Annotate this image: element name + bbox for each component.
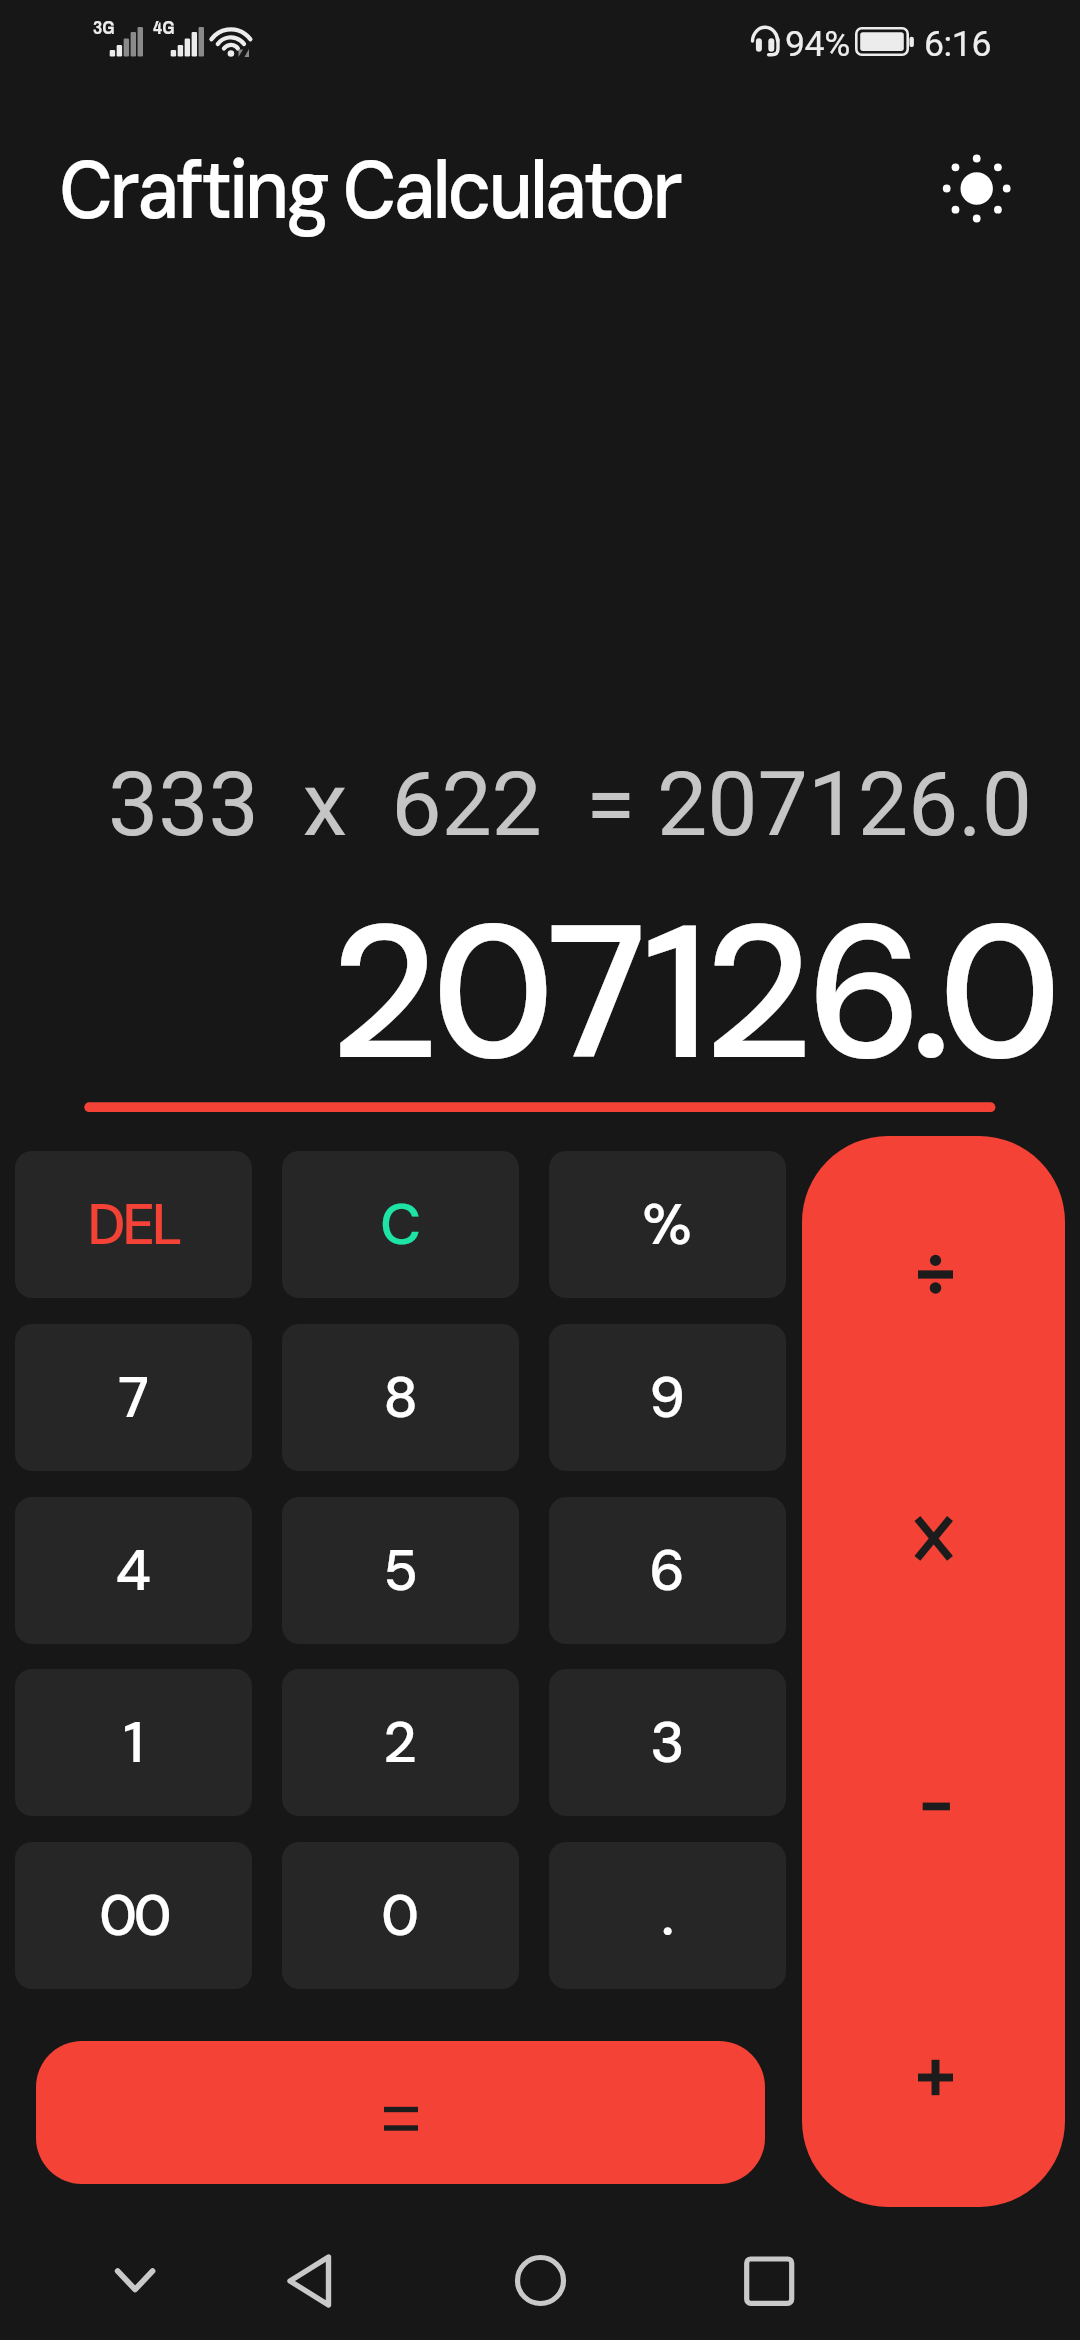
staticText: DEL	[87, 1187, 180, 1262]
button[interactable]: DEL	[15, 1151, 252, 1298]
staticText: 333 x 622 = 207126.0	[108, 752, 1032, 857]
staticText: 9	[649, 1360, 686, 1435]
staticText: 8	[383, 1360, 419, 1435]
button[interactable]: %	[549, 1151, 786, 1298]
button[interactable]: Add	[802, 1939, 1065, 2207]
button[interactable]: Equals	[36, 2041, 765, 2184]
staticText: 6:16	[924, 23, 992, 65]
staticText: 6	[649, 1533, 686, 1608]
staticText: 1	[123, 1705, 144, 1780]
staticText: 4G	[153, 19, 175, 38]
staticText: 2	[383, 1705, 418, 1780]
staticText: 7	[118, 1360, 150, 1435]
button[interactable]: Subtract	[802, 1671, 1065, 1939]
staticText: 00	[99, 1878, 169, 1953]
staticText: 94%	[785, 23, 850, 65]
button[interactable]: 8	[282, 1324, 519, 1471]
staticText: 3	[650, 1705, 685, 1780]
button[interactable]: 7	[15, 1324, 252, 1471]
button[interactable]: 4	[15, 1497, 252, 1644]
staticText: 4	[115, 1533, 152, 1608]
button[interactable]: 1	[15, 1669, 252, 1816]
button[interactable]: .	[549, 1842, 786, 1989]
button[interactable]: 6	[549, 1497, 786, 1644]
staticText: %	[642, 1187, 693, 1262]
staticText: .	[661, 1878, 675, 1953]
button[interactable]: 2	[282, 1669, 519, 1816]
button[interactable]: 0	[282, 1842, 519, 1989]
staticText: 3G	[93, 19, 115, 38]
staticText: C	[380, 1187, 422, 1262]
button[interactable]: Multiply	[802, 1404, 1065, 1672]
staticText: 207126.0	[329, 871, 1055, 1114]
staticText: Crafting Calculator	[59, 137, 680, 244]
button[interactable]: C	[282, 1151, 519, 1298]
button[interactable]: 00	[15, 1842, 252, 1989]
button[interactable]: Divide	[802, 1136, 1065, 1404]
staticText: 5	[383, 1533, 419, 1608]
button[interactable]: Toggle theme	[930, 142, 1023, 235]
button[interactable]: 5	[282, 1497, 519, 1644]
button[interactable]: 9	[549, 1324, 786, 1471]
staticText: 0	[381, 1878, 420, 1953]
button[interactable]: 3	[549, 1669, 786, 1816]
